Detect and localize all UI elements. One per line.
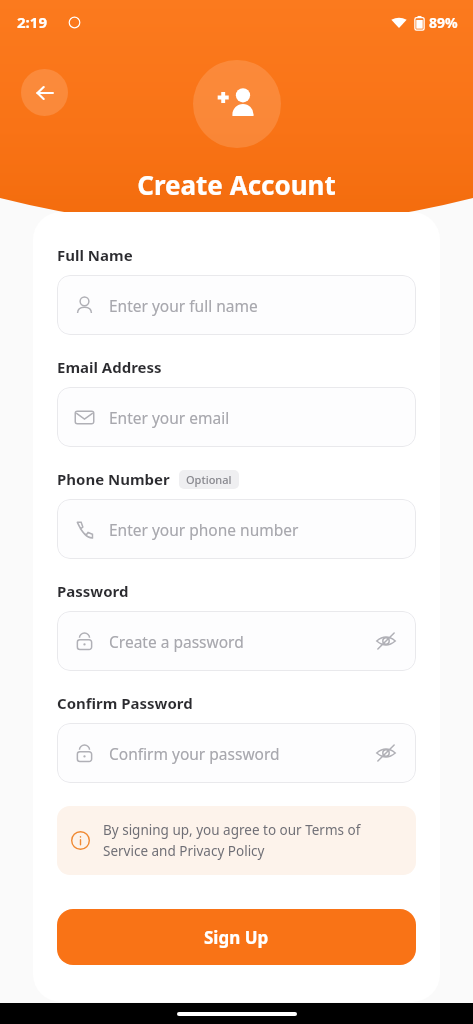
staticText: Full Name — [57, 245, 133, 265]
button[interactable]: By signing up, you agree to our Terms of… — [57, 806, 416, 875]
staticText: Create a password — [109, 631, 373, 652]
button[interactable]: Enter your phone number — [57, 499, 416, 559]
button[interactable]: Sign Up — [57, 909, 416, 965]
staticText: Enter your phone number — [109, 519, 399, 540]
button[interactable]: Enter your email — [57, 387, 416, 447]
staticText: Enter your full name — [109, 295, 399, 316]
staticText: Password — [57, 581, 129, 601]
button[interactable]: Toggle password visibility — [373, 740, 399, 766]
staticText: Create Account — [137, 167, 336, 202]
button[interactable]: Confirm your password — [57, 723, 416, 783]
staticText: 2:19 — [17, 12, 47, 32]
button[interactable]: Back — [21, 69, 68, 116]
staticText: Email Address — [57, 357, 162, 377]
staticText: 89% — [429, 13, 458, 32]
staticText: By signing up, you agree to our Terms of… — [103, 821, 402, 860]
staticText: Confirm your password — [109, 743, 373, 764]
staticText: Phone Number — [57, 469, 170, 489]
staticText: Confirm Password — [57, 693, 193, 713]
button[interactable]: Create a password — [57, 611, 416, 671]
button[interactable]: Toggle password visibility — [373, 628, 399, 654]
staticText: Enter your email — [109, 407, 399, 428]
button[interactable]: Enter your full name — [57, 275, 416, 335]
staticText: Optional — [186, 472, 232, 487]
staticText: Sign Up — [204, 926, 269, 949]
